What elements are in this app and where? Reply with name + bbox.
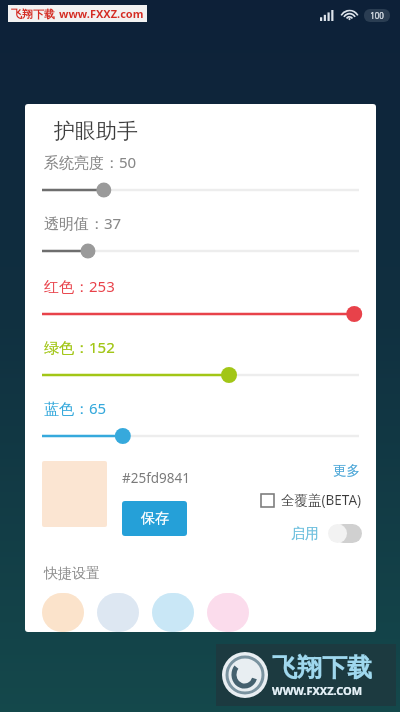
staticText: 100 bbox=[370, 10, 384, 21]
button[interactable]: Watermark bbox=[216, 644, 396, 706]
button[interactable]: 启用 bbox=[291, 522, 362, 545]
staticText: 飞翔下载 bbox=[272, 652, 372, 683]
button[interactable]: 全覆盖(BETA) bbox=[261, 489, 362, 511]
staticText: 红色：253 bbox=[44, 276, 115, 296]
button[interactable]: 系统亮度：50 bbox=[25, 179, 376, 201]
button[interactable]: Preset colour bbox=[152, 593, 194, 632]
staticText: 系统亮度：50 bbox=[44, 152, 137, 172]
staticText: 快捷设置 bbox=[44, 565, 100, 583]
staticText: WWW.FXXZ.COM bbox=[272, 683, 363, 698]
staticText: www.FXXZ.com bbox=[59, 6, 144, 21]
button[interactable]: 保存 bbox=[122, 501, 187, 536]
button[interactable]: 蓝色：65 bbox=[25, 425, 376, 447]
staticText: 保存 bbox=[141, 510, 169, 528]
staticText: 透明值：37 bbox=[44, 213, 122, 233]
staticText: 护眼助手 bbox=[54, 118, 138, 144]
staticText: 绿色：152 bbox=[44, 337, 115, 357]
button[interactable]: 透明值：37 bbox=[25, 240, 376, 262]
staticText: 更多 bbox=[333, 462, 360, 479]
button[interactable]: Preset colour bbox=[207, 593, 249, 632]
staticText: #25fd9841 bbox=[122, 469, 190, 487]
button[interactable]: Preset colour bbox=[97, 593, 139, 632]
staticText: 启用 bbox=[291, 525, 319, 543]
staticText: 飞翔下载 bbox=[11, 7, 55, 21]
button[interactable]: 绿色：152 bbox=[25, 364, 376, 386]
staticText: 蓝色：65 bbox=[44, 398, 107, 418]
button[interactable]: 红色：253 bbox=[25, 303, 376, 325]
button[interactable]: Preset colour bbox=[42, 593, 84, 632]
button[interactable]: 更多 bbox=[331, 461, 362, 480]
staticText: 全覆盖(BETA) bbox=[281, 491, 362, 509]
